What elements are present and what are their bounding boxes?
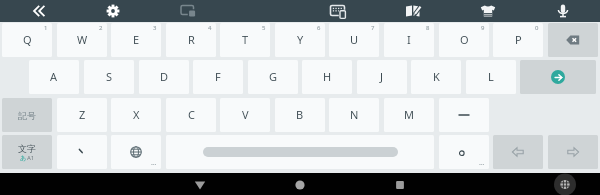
button[interactable]: O bbox=[439, 23, 489, 57]
button[interactable]: N bbox=[329, 98, 379, 132]
button[interactable]: C bbox=[166, 98, 216, 132]
button[interactable] bbox=[548, 23, 598, 57]
staticText: K bbox=[433, 69, 440, 84]
staticText: V bbox=[242, 107, 249, 122]
staticText: F bbox=[215, 69, 221, 84]
button[interactable]: L bbox=[466, 60, 516, 94]
staticText: O bbox=[460, 32, 469, 47]
staticText: S bbox=[106, 69, 113, 84]
button[interactable]: M bbox=[384, 98, 434, 132]
button[interactable]: Y bbox=[275, 23, 325, 57]
button[interactable] bbox=[493, 135, 543, 169]
staticText: 1 bbox=[44, 24, 48, 32]
button[interactable]: … bbox=[111, 135, 161, 169]
staticText: E bbox=[133, 32, 140, 47]
button[interactable] bbox=[520, 60, 596, 94]
staticText: X bbox=[133, 107, 140, 122]
button[interactable]: Q bbox=[2, 23, 52, 57]
staticText: P bbox=[515, 32, 522, 47]
button[interactable]: A bbox=[29, 60, 79, 94]
button[interactable]: V bbox=[220, 98, 270, 132]
button[interactable]: H bbox=[302, 60, 352, 94]
button[interactable]: T bbox=[220, 23, 270, 57]
staticText: B bbox=[296, 107, 304, 122]
button[interactable]: Z bbox=[57, 98, 107, 132]
staticText: T bbox=[242, 32, 249, 47]
button[interactable]: … bbox=[439, 135, 489, 169]
staticText: R bbox=[188, 32, 195, 47]
staticText: A bbox=[50, 69, 58, 84]
button[interactable]: U bbox=[329, 23, 379, 57]
staticText: 5 bbox=[262, 24, 266, 32]
staticText: 6 bbox=[317, 24, 321, 32]
staticText: 4 bbox=[208, 24, 212, 32]
button[interactable] bbox=[75, 0, 150, 22]
button[interactable]: D bbox=[139, 60, 189, 94]
button[interactable]: E bbox=[111, 23, 161, 57]
button[interactable]: G bbox=[248, 60, 298, 94]
staticText: J bbox=[380, 69, 384, 84]
staticText: 7 bbox=[371, 24, 375, 32]
staticText: 記号 bbox=[18, 110, 36, 121]
staticText: M bbox=[404, 107, 414, 122]
button[interactable] bbox=[439, 98, 489, 132]
button[interactable] bbox=[150, 0, 225, 22]
staticText: Y bbox=[297, 32, 304, 47]
button[interactable]: 文字 bbox=[2, 135, 52, 169]
button[interactable] bbox=[300, 0, 375, 22]
staticText: I bbox=[407, 32, 411, 47]
button[interactable] bbox=[548, 135, 598, 169]
button[interactable] bbox=[525, 0, 600, 22]
staticText: W bbox=[77, 32, 88, 47]
button[interactable] bbox=[278, 173, 322, 195]
button[interactable] bbox=[378, 173, 422, 195]
staticText: 0 bbox=[535, 24, 539, 32]
staticText: 文字 bbox=[18, 143, 36, 154]
staticText: A1 bbox=[27, 154, 35, 162]
button[interactable] bbox=[450, 0, 525, 22]
button[interactable]: I bbox=[384, 23, 434, 57]
button[interactable] bbox=[375, 0, 450, 22]
button[interactable]: X bbox=[111, 98, 161, 132]
staticText: Z bbox=[79, 107, 86, 122]
button[interactable]: B bbox=[275, 98, 325, 132]
staticText: あ bbox=[20, 154, 27, 162]
staticText: … bbox=[479, 158, 485, 168]
staticText: L bbox=[488, 69, 494, 84]
staticText: 9 bbox=[481, 24, 485, 32]
button[interactable]: K bbox=[411, 60, 461, 94]
button[interactable]: 記号 bbox=[2, 98, 52, 132]
staticText: 3 bbox=[153, 24, 157, 32]
button[interactable]: W bbox=[57, 23, 107, 57]
staticText: … bbox=[151, 158, 157, 168]
staticText: Q bbox=[23, 32, 32, 47]
staticText: 2 bbox=[99, 24, 103, 32]
button[interactable]: F bbox=[193, 60, 243, 94]
button[interactable]: S bbox=[84, 60, 134, 94]
button[interactable] bbox=[543, 173, 587, 195]
staticText: C bbox=[188, 107, 195, 122]
button[interactable] bbox=[178, 173, 222, 195]
staticText: 8 bbox=[426, 24, 430, 32]
staticText: H bbox=[323, 69, 332, 84]
button[interactable]: R bbox=[166, 23, 216, 57]
button[interactable] bbox=[57, 135, 107, 169]
staticText: N bbox=[350, 107, 359, 122]
staticText: U bbox=[350, 32, 359, 47]
button[interactable] bbox=[0, 0, 75, 22]
staticText: D bbox=[160, 69, 169, 84]
button[interactable]: J bbox=[357, 60, 407, 94]
staticText: G bbox=[269, 69, 278, 84]
button[interactable]: P bbox=[493, 23, 543, 57]
button[interactable] bbox=[166, 135, 434, 169]
